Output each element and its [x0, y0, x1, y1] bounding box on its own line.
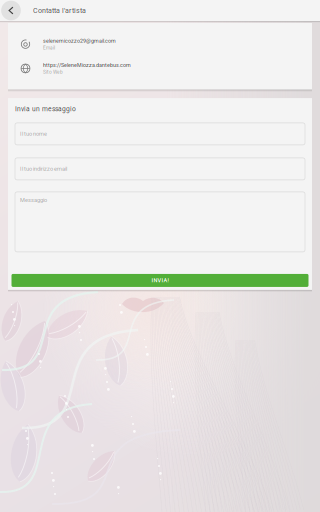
staticText: INVIA! — [151, 277, 168, 284]
staticText: Invia un messaggio — [15, 105, 76, 113]
button[interactable]: INVIA! — [11, 274, 308, 287]
staticText: Il tuo indirizzo email — [20, 166, 67, 172]
button[interactable]: Back — [0, 0, 22, 21]
staticText: Sito Web — [43, 69, 63, 75]
button[interactable]: selenemicozzo29@gmail.com — [8, 32, 312, 56]
staticText: selenemicozzo29@gmail.com — [43, 38, 116, 44]
staticText: Contatta l'artista — [33, 6, 86, 15]
staticText: Il tuo nome — [20, 131, 47, 137]
staticText: https://SeleneMiozza.dantebus.com — [43, 62, 131, 68]
staticText: Email — [43, 45, 55, 51]
button[interactable]: https://SeleneMiozza.dantebus.com — [8, 56, 312, 81]
staticText: Messaggio — [20, 197, 47, 203]
